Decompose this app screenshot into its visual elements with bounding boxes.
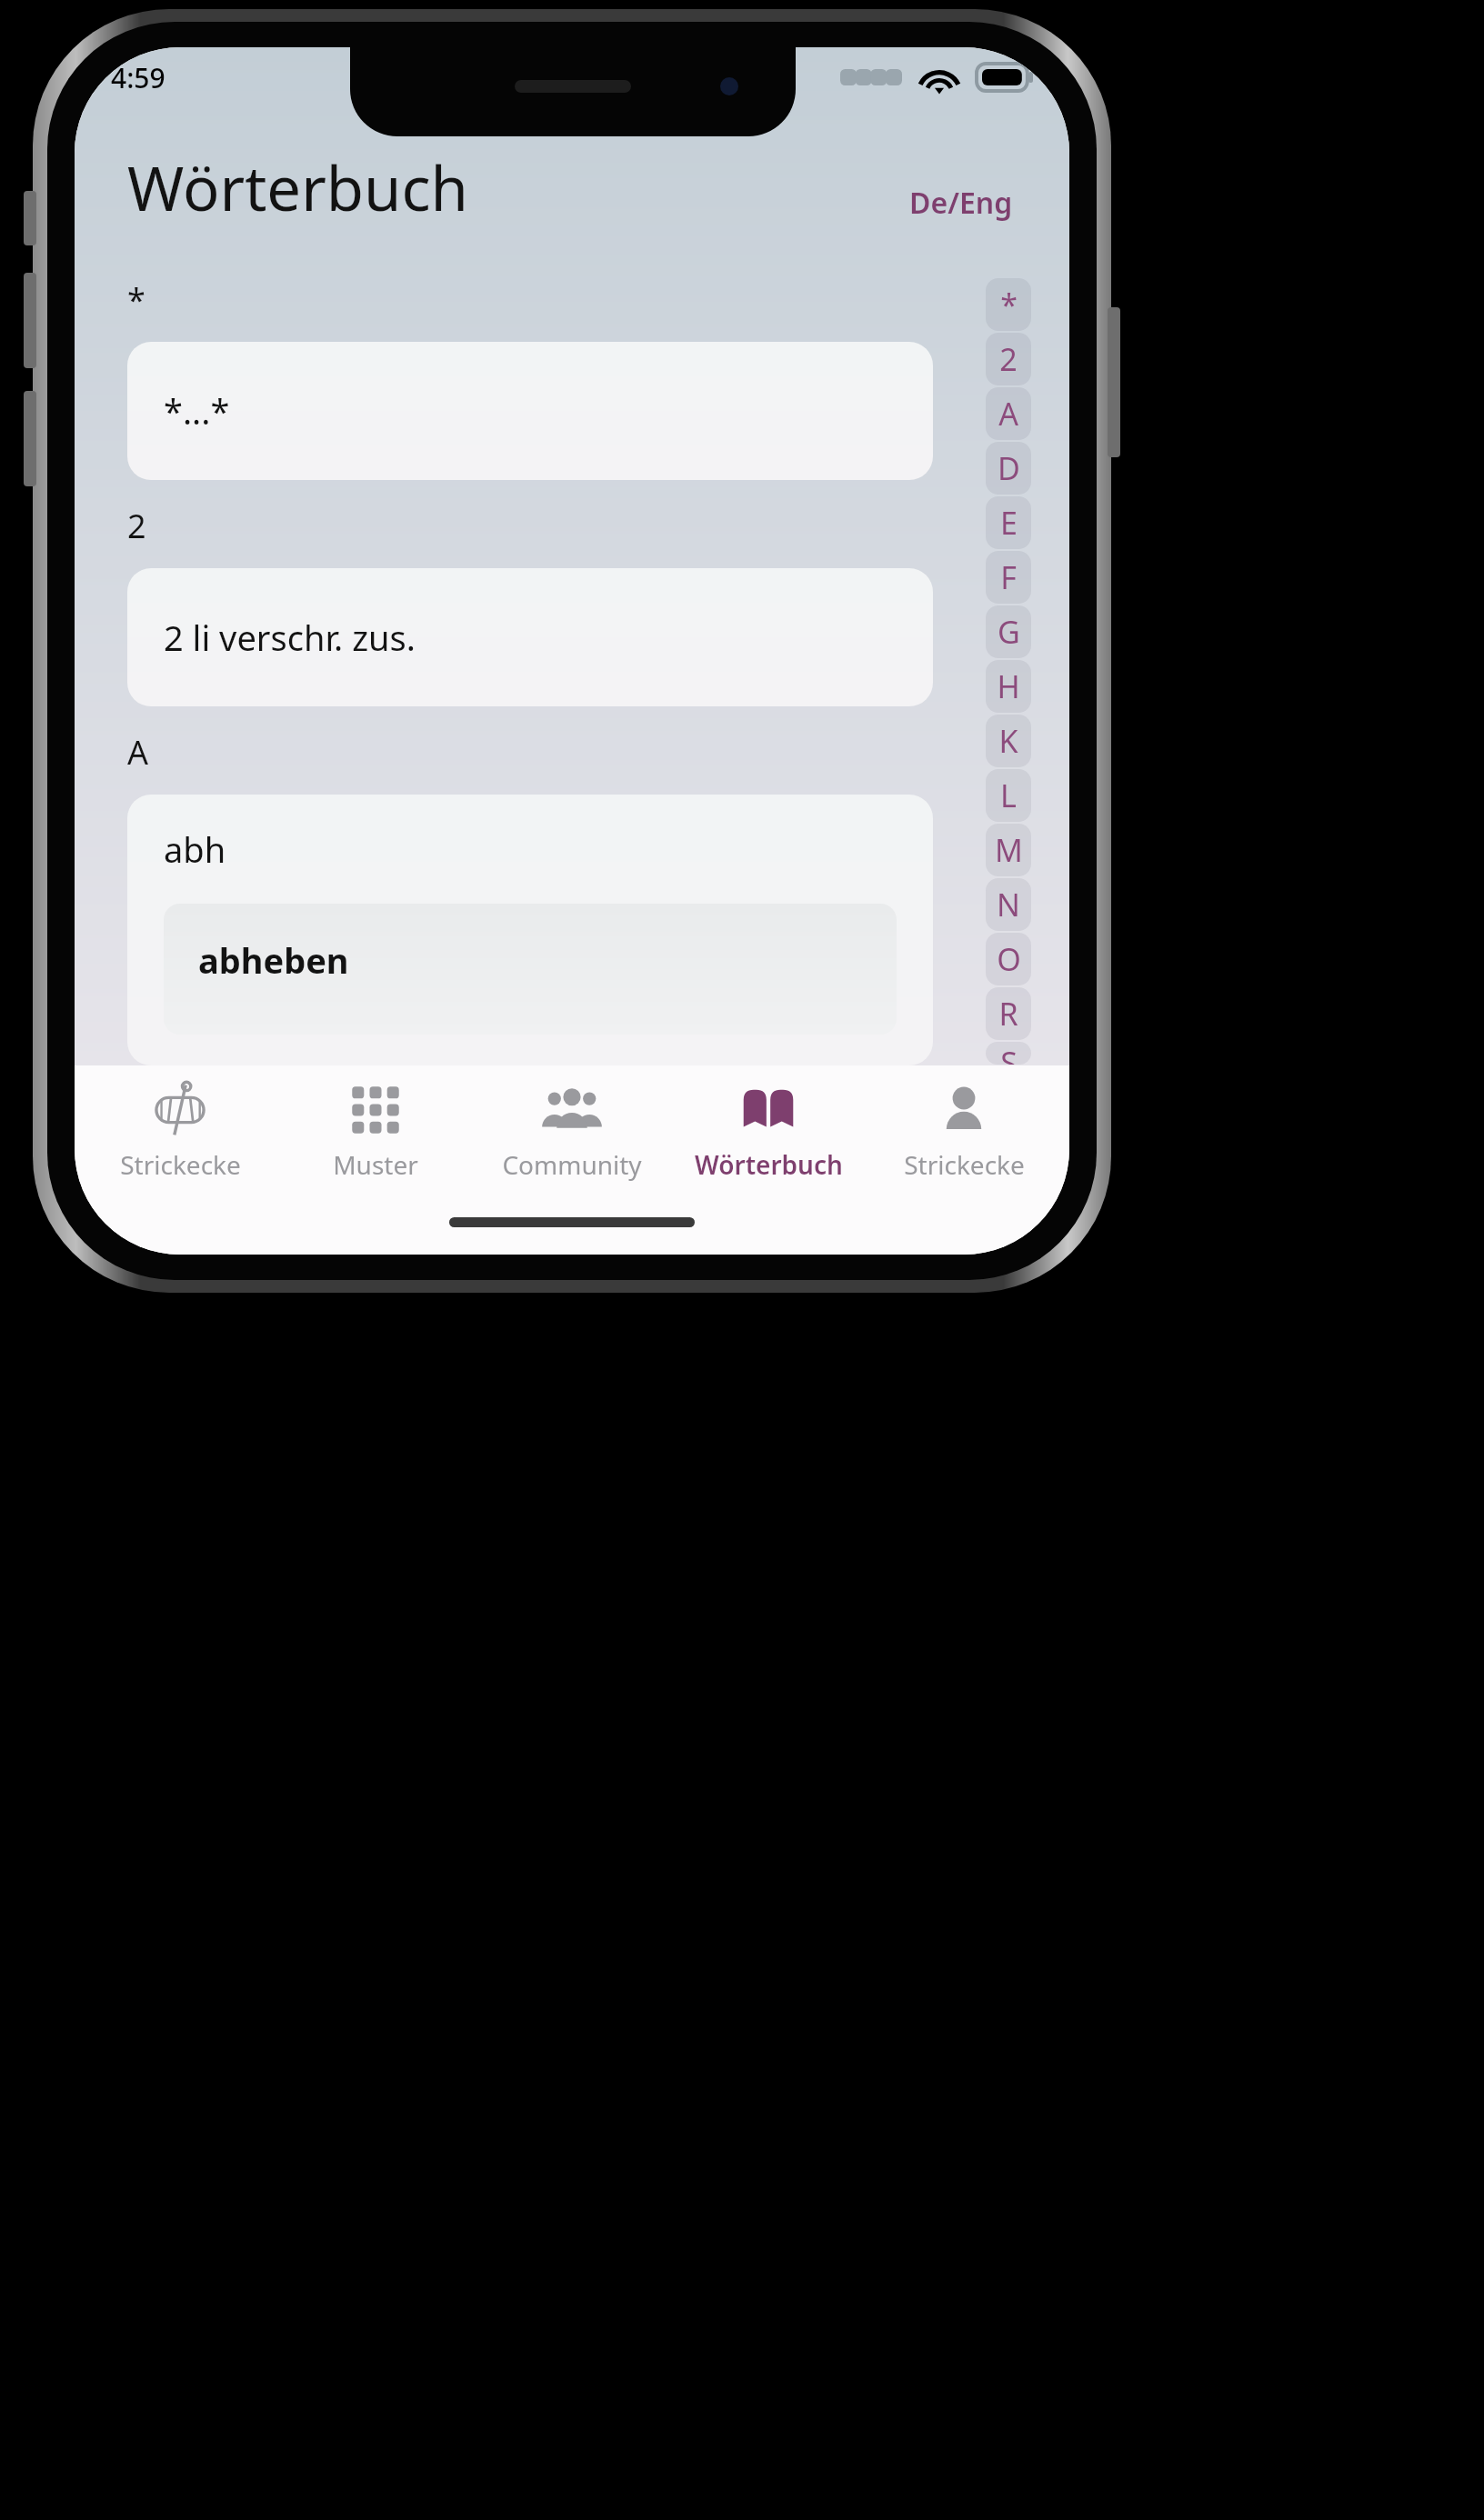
other: Muster <box>347 1082 404 1138</box>
staticText: * <box>127 277 145 322</box>
button[interactable]: R <box>986 987 1031 1040</box>
staticText: Community <box>502 1147 642 1182</box>
staticText: 2 <box>127 504 146 548</box>
button[interactable]: Profil <box>873 1078 1055 1185</box>
staticText: E <box>1000 502 1018 544</box>
staticText: A <box>127 730 149 775</box>
other: Wörterbuch <box>740 1082 797 1138</box>
button[interactable]: M <box>986 824 1031 876</box>
staticText: S <box>1000 1042 1018 1065</box>
button[interactable]: D <box>986 442 1031 495</box>
button[interactable]: *...* <box>127 342 933 480</box>
staticText: Wörterbuch <box>695 1147 843 1182</box>
staticText: R <box>998 993 1018 1035</box>
button[interactable]: abh <box>127 795 933 1065</box>
button[interactable]: G <box>986 605 1031 658</box>
button[interactable]: S <box>986 1042 1031 1065</box>
staticText: D <box>998 447 1020 489</box>
staticText: A <box>998 393 1018 435</box>
button[interactable]: F <box>986 551 1031 604</box>
button[interactable]: Strickecke <box>89 1078 271 1185</box>
button[interactable]: A <box>986 387 1031 440</box>
staticText: H <box>997 665 1020 707</box>
staticText: N <box>997 884 1020 925</box>
staticText: Muster <box>333 1147 418 1182</box>
button[interactable]: E <box>986 496 1031 549</box>
staticText: 2 <box>999 338 1018 380</box>
staticText: 4:59 <box>111 59 165 96</box>
button[interactable]: N <box>986 878 1031 931</box>
staticText: G <box>998 611 1020 653</box>
other: Profil <box>936 1082 992 1138</box>
staticText: L <box>1000 775 1017 816</box>
staticText: F <box>1000 556 1017 598</box>
button[interactable]: Wörterbuch <box>677 1078 859 1185</box>
button[interactable]: * <box>986 278 1031 331</box>
button[interactable]: Muster <box>285 1078 466 1185</box>
button[interactable]: H <box>986 660 1031 713</box>
staticText: M <box>995 829 1023 871</box>
button[interactable]: O <box>986 933 1031 985</box>
staticText: *...* <box>164 387 230 435</box>
staticText: 2 li verschr. zus. <box>164 614 416 661</box>
staticText: abh <box>164 825 226 873</box>
button[interactable]: De/Eng <box>906 177 1017 228</box>
staticText: Strickecke <box>904 1147 1025 1182</box>
staticText: * <box>1000 284 1018 325</box>
staticText: O <box>997 938 1021 980</box>
staticText: De/Eng <box>909 183 1013 223</box>
button[interactable]: L <box>986 769 1031 822</box>
button[interactable]: 2 <box>986 333 1031 385</box>
button[interactable]: K <box>986 715 1031 767</box>
button[interactable]: 2 li verschr. zus. <box>127 568 933 706</box>
staticText: Strickecke <box>120 1147 241 1182</box>
other: Community <box>544 1082 600 1138</box>
staticText: K <box>998 720 1018 762</box>
button[interactable]: Community <box>481 1078 663 1185</box>
staticText: abheben <box>198 936 349 984</box>
staticText: Wörterbuch <box>127 145 468 228</box>
other: Strickecke <box>152 1082 208 1138</box>
